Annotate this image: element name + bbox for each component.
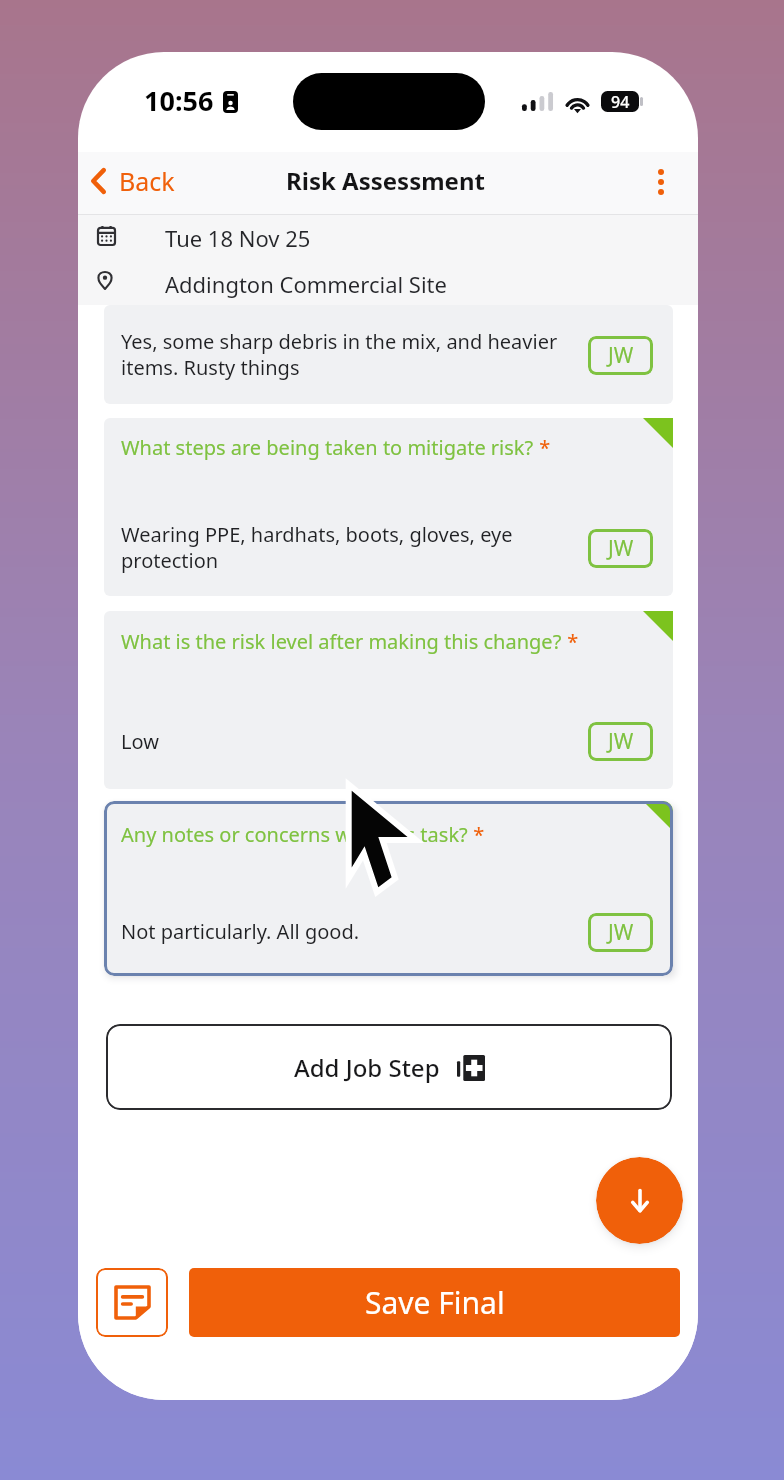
button[interactable]: Save Final xyxy=(189,1268,680,1337)
staticText: Yes, some sharp debris in the mix, and h… xyxy=(121,328,558,381)
staticText: JW xyxy=(608,727,634,756)
staticText: Tue 18 Nov 25 xyxy=(165,223,311,253)
staticText: Addington Commercial Site xyxy=(165,269,447,299)
staticText: Any notes or concerns with this task? xyxy=(121,821,468,848)
button[interactable]: What is the risk level after making this… xyxy=(104,611,673,789)
staticText: * xyxy=(534,434,551,461)
staticText: Save Final xyxy=(365,1282,505,1323)
staticText: * xyxy=(562,628,579,655)
staticText: 10:56 xyxy=(144,82,214,119)
staticText: Risk Assessment xyxy=(286,164,485,197)
staticText: Back xyxy=(119,164,175,198)
button[interactable]: JW xyxy=(588,722,653,761)
button[interactable]: Add Job Step xyxy=(106,1024,672,1110)
staticText: * xyxy=(468,821,485,848)
button[interactable]: Scroll to bottom xyxy=(596,1157,683,1244)
staticText: Not particularly. All good. xyxy=(121,918,360,945)
button[interactable]: JW xyxy=(588,529,653,568)
staticText: 94 xyxy=(611,91,630,112)
staticText: JW xyxy=(608,341,634,370)
staticText: Low xyxy=(121,728,159,755)
button[interactable]: Yes, some sharp debris in the mix, and h… xyxy=(104,305,673,404)
staticText: Add Job Step xyxy=(294,1051,440,1084)
button[interactable]: Back xyxy=(84,155,182,207)
button[interactable]: What steps are being taken to mitigate r… xyxy=(104,418,673,596)
button[interactable]: JW xyxy=(588,913,653,952)
staticText: JW xyxy=(608,918,634,947)
button[interactable]: Notes xyxy=(96,1268,168,1337)
button[interactable]: Any notes or concerns with this task? xyxy=(104,801,673,976)
staticText: What steps are being taken to mitigate r… xyxy=(121,434,534,461)
button[interactable]: JW xyxy=(588,336,653,375)
staticText: What is the risk level after making this… xyxy=(121,628,562,655)
staticText: JW xyxy=(608,534,634,563)
button[interactable]: More options xyxy=(645,156,677,208)
staticText: Wearing PPE, hardhats, boots, gloves, ey… xyxy=(121,521,513,574)
